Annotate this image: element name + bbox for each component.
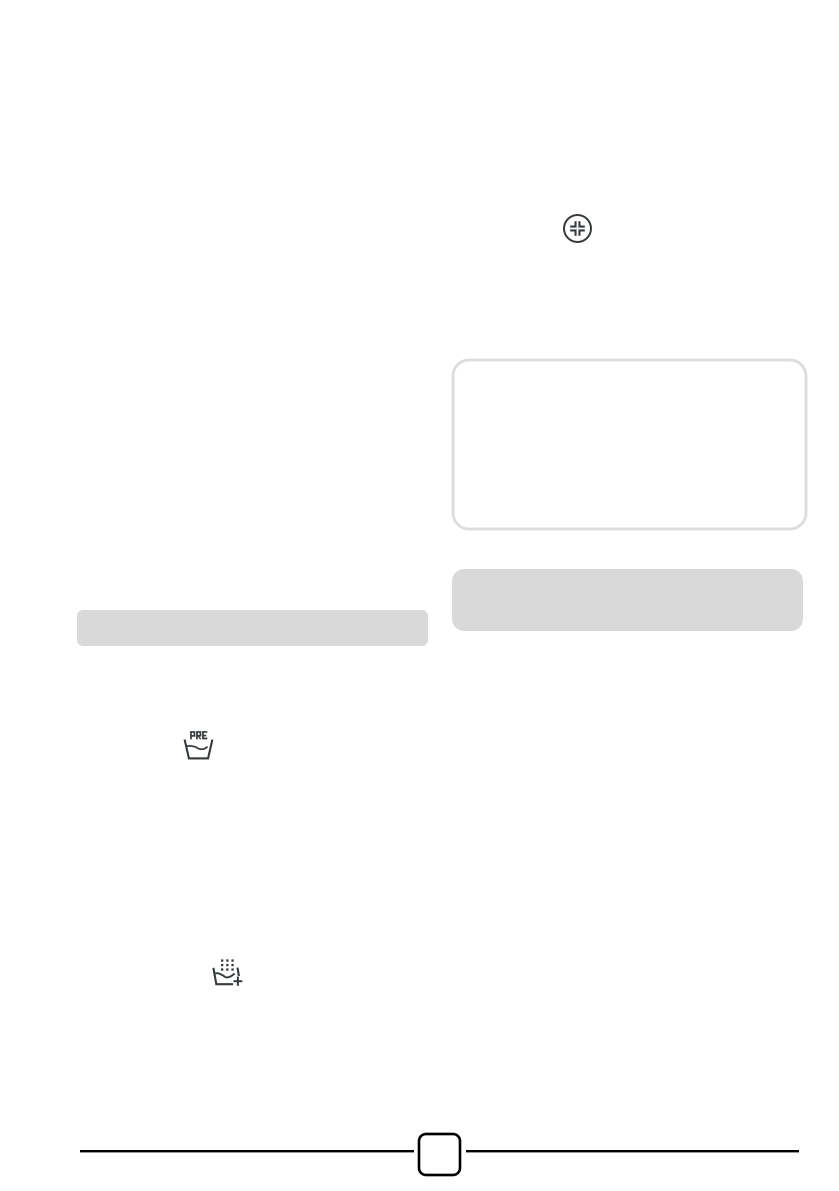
button[interactable]: Fit to page bbox=[564, 215, 591, 242]
